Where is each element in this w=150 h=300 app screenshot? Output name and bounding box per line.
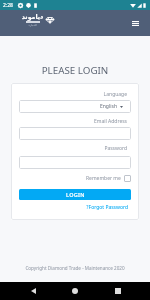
- button[interactable]: [19, 156, 131, 169]
- button[interactable]: [19, 127, 131, 140]
- staticText: Copyright Diamond Trade - Maintenance 20…: [0, 265, 150, 271]
- staticText: Remember me: [86, 175, 121, 182]
- staticText: Password: [11, 145, 127, 152]
- button[interactable]: Back: [24, 282, 42, 300]
- button[interactable]: Home: [66, 282, 84, 300]
- staticText: Email Address: [11, 118, 127, 125]
- button[interactable]: Open navigation menu: [128, 16, 142, 30]
- staticText: 2:28: [3, 2, 13, 9]
- button[interactable]: English: [19, 100, 131, 113]
- staticText: PLEASE LOGIN: [0, 64, 150, 77]
- button[interactable]: ?Forgot Password: [11, 204, 128, 211]
- button[interactable]: Remember me: [11, 175, 131, 182]
- staticText: LOGIN: [66, 191, 85, 198]
- staticText: للتجارة: [20, 23, 45, 26]
- staticText: دياموند: [20, 13, 45, 20]
- staticText: English: [100, 103, 118, 110]
- button[interactable]: LOGIN: [19, 189, 131, 200]
- button[interactable]: Recent apps: [109, 282, 127, 300]
- staticText: Language: [11, 91, 127, 98]
